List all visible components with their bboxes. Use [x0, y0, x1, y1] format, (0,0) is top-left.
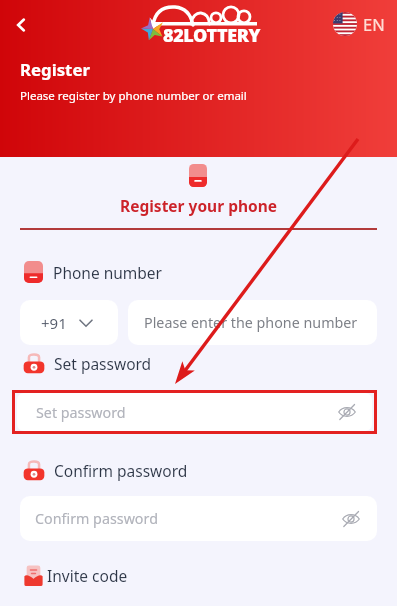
button[interactable]: EN [333, 10, 385, 38]
staticText: 82LOTTERY [163, 23, 261, 48]
staticText: EN [363, 13, 385, 35]
button[interactable]: Confirm password [20, 496, 377, 541]
staticText: Please enter the phone number [144, 313, 358, 332]
button[interactable]: +91 [20, 300, 118, 345]
staticText: Register [20, 58, 90, 81]
staticText: +91 [41, 313, 67, 333]
staticText: Set password [36, 403, 126, 422]
button[interactable]: Set password [17, 393, 372, 431]
button[interactable]: Show password [342, 510, 360, 528]
button[interactable]: Back [6, 10, 36, 40]
button[interactable]: Please enter the phone number [128, 300, 377, 345]
staticText: Phone number [53, 262, 163, 283]
staticText: Please register by phone number or email [20, 88, 247, 104]
staticText: Invite code [47, 565, 128, 586]
staticText: Confirm password [54, 460, 188, 481]
button[interactable]: Show password [338, 403, 356, 421]
staticText: Set password [54, 353, 152, 374]
staticText: Register your phone [120, 195, 278, 216]
staticText: Confirm password [35, 509, 158, 528]
